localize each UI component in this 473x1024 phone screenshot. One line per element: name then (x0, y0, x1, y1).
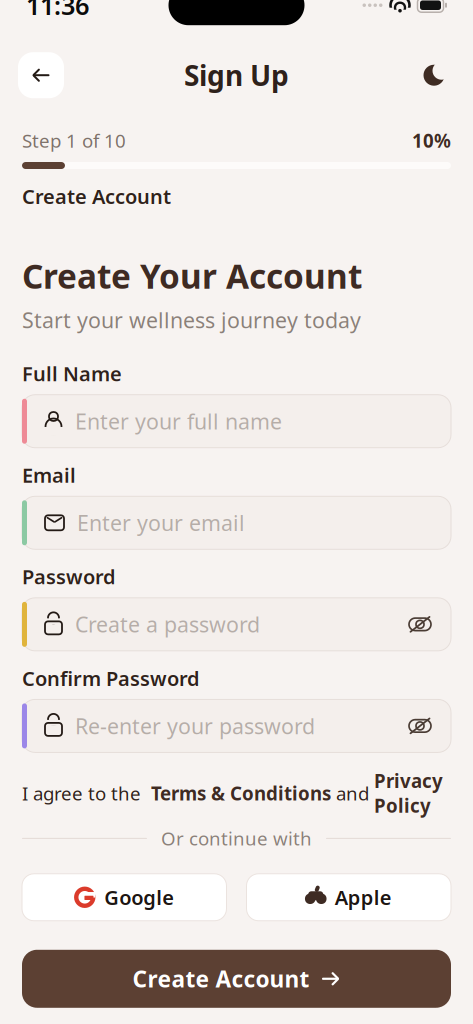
button[interactable]: Google (22, 874, 226, 921)
staticText: 11:36 (26, 0, 89, 22)
button[interactable]: Enter your full name (22, 395, 451, 448)
button[interactable]: Terms & Conditions (146, 781, 331, 806)
staticText: Confirm Password (22, 665, 200, 691)
button[interactable]: Re-enter your password (22, 699, 451, 752)
staticText: Full Name (22, 360, 122, 387)
staticText: Create a password (75, 610, 260, 638)
staticText: Or continue with (161, 826, 312, 851)
staticText: Apple (335, 884, 392, 911)
staticText: 10% (412, 128, 451, 153)
staticText: Sign Up (184, 57, 289, 94)
staticText: Google (104, 884, 174, 911)
button[interactable]: Create Account (22, 950, 451, 1008)
staticText: Create Your Account (22, 254, 362, 298)
staticText: Re-enter your password (75, 712, 315, 740)
staticText: Enter your full name (75, 407, 282, 435)
staticText: I agree to the (22, 781, 146, 806)
staticText: Password (22, 563, 116, 590)
staticText: Email (22, 462, 76, 488)
button[interactable]: Dark mode (417, 58, 451, 92)
staticText: Create Account (22, 183, 171, 210)
button[interactable]: Enter your email (22, 496, 451, 549)
button[interactable]: Apple (246, 874, 451, 921)
staticText: Step 1 of 10 (22, 128, 126, 153)
staticText: Enter your email (77, 509, 245, 537)
button[interactable]: Privacy Policy (374, 768, 443, 818)
staticText: Terms & Conditions (146, 781, 331, 806)
staticText: Start your wellness journey today (22, 306, 361, 334)
staticText: Privacy Policy (374, 768, 443, 818)
button[interactable]: Back (18, 52, 64, 98)
staticText: and (331, 781, 374, 806)
button[interactable]: Create a password (22, 598, 451, 651)
staticText: Create Account (132, 964, 309, 994)
